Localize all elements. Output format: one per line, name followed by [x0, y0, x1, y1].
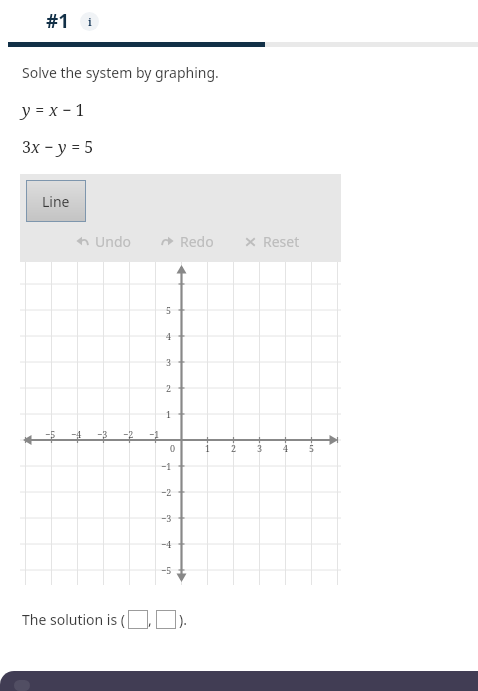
staticText: x: [31, 136, 40, 158]
staticText: Reset: [263, 232, 300, 251]
staticText: − 1: [58, 99, 85, 121]
staticText: 3: [257, 442, 263, 454]
staticText: −5: [45, 428, 56, 440]
staticText: −5: [161, 564, 172, 576]
staticText: 1: [205, 442, 211, 454]
staticText: 4: [166, 330, 172, 342]
staticText: Redo: [180, 232, 214, 251]
staticText: −2: [123, 428, 134, 440]
staticText: y: [22, 99, 31, 121]
staticText: −4: [161, 538, 172, 550]
staticText: x: [49, 99, 58, 121]
staticText: −3: [161, 512, 172, 524]
staticText: −1: [161, 460, 172, 472]
staticText: i: [88, 14, 92, 29]
staticText: =: [31, 99, 49, 121]
staticText: −: [40, 136, 58, 158]
staticText: 2: [166, 382, 172, 394]
staticText: 1: [166, 408, 172, 420]
staticText: 5: [166, 304, 172, 316]
button[interactable]: #1: [40, 4, 76, 38]
staticText: 3: [166, 356, 172, 368]
staticText: ).: [179, 610, 187, 629]
staticText: Solve the system by graphing.: [22, 63, 219, 82]
staticText: 5: [309, 442, 315, 454]
staticText: 4: [283, 442, 289, 454]
staticText: −4: [71, 428, 82, 440]
staticText: 0: [170, 442, 176, 454]
button[interactable]: Reset: [242, 229, 302, 254]
staticText: Undo: [95, 232, 131, 251]
staticText: −2: [161, 486, 172, 498]
staticText: −3: [97, 428, 108, 440]
staticText: ,: [148, 610, 152, 629]
staticText: 2: [231, 442, 237, 454]
staticText: Line: [42, 192, 70, 211]
button[interactable]: Information: [80, 12, 99, 31]
staticText: #1: [46, 8, 70, 34]
button[interactable]: Line: [26, 180, 86, 222]
staticText: −1: [149, 428, 160, 440]
button[interactable]: Answer field: [156, 610, 176, 629]
staticText: The solution is (: [22, 610, 125, 629]
staticText: = 5: [67, 136, 94, 158]
staticText: y: [58, 136, 67, 158]
button[interactable]: Undo: [74, 229, 133, 254]
button[interactable]: Redo: [159, 229, 216, 254]
button[interactable]: Answer field: [128, 610, 148, 629]
staticText: 3: [22, 136, 31, 158]
